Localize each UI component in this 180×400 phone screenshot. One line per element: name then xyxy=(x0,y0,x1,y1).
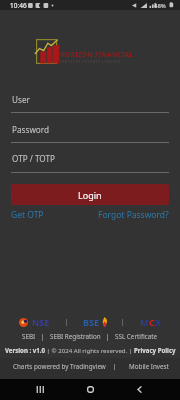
button[interactable]: Forgot Password? xyxy=(98,209,169,221)
staticText: OTP / TOTP xyxy=(12,153,55,164)
staticText: HORIZON FINANCIAL xyxy=(60,50,134,59)
staticText: | xyxy=(108,317,140,327)
staticText: C xyxy=(149,316,155,328)
staticText: Password xyxy=(12,124,50,135)
button[interactable]: Get OTP xyxy=(11,209,44,221)
button[interactable]: Back xyxy=(130,380,149,399)
button[interactable]: SEBI xyxy=(22,332,36,341)
staticText: X xyxy=(155,316,162,328)
staticText: NSE xyxy=(32,316,50,328)
button[interactable]: Recent apps xyxy=(31,380,50,399)
staticText: Login xyxy=(78,189,102,201)
staticText: | xyxy=(36,332,50,341)
staticText: | © 2024 All rights reserved. | xyxy=(45,346,134,354)
button[interactable]: SEBI Registration xyxy=(50,332,101,341)
button[interactable]: Mobile Invest xyxy=(129,362,169,371)
staticText: 48% xyxy=(154,2,166,10)
staticText: M xyxy=(140,316,149,328)
staticText: 10:46 xyxy=(10,1,27,10)
button[interactable]: Privacy Policy xyxy=(134,346,176,354)
button[interactable]: SSL Certificate xyxy=(115,332,158,341)
staticText: SERVICES PRIVATE LIMITED xyxy=(60,59,121,64)
staticText: | xyxy=(101,332,115,341)
staticText: | xyxy=(50,317,83,327)
staticText: User xyxy=(12,94,30,105)
staticText: BSE xyxy=(83,316,99,328)
button[interactable]: Login xyxy=(11,184,169,205)
button[interactable]: Charts powered by Tradingview xyxy=(13,362,106,371)
staticText: Version : v1.0 xyxy=(5,346,45,354)
button[interactable]: Home xyxy=(81,380,100,399)
